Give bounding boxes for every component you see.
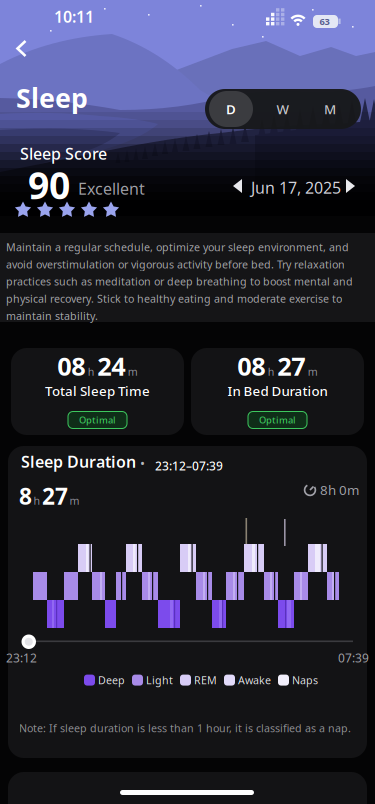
staticText: Note: If sleep duration is less than 1 h… (19, 721, 351, 735)
staticText: 90 (28, 160, 70, 210)
button[interactable]: D (209, 91, 253, 127)
staticText: Optimal (259, 414, 296, 426)
staticText: Sleep (16, 80, 88, 115)
staticText: m (128, 364, 138, 379)
staticText: practices such as meditation or deep bre… (6, 274, 353, 288)
button[interactable]: Previous day (231, 179, 245, 193)
staticText: m (69, 494, 79, 508)
staticText: Awake (238, 673, 271, 687)
button[interactable]: M (310, 92, 350, 126)
staticText: Sleep Duration (21, 451, 136, 472)
staticText: M (324, 100, 336, 118)
staticText: D (226, 100, 236, 118)
staticText: 27 (42, 481, 68, 511)
staticText: 63 (319, 15, 329, 28)
button[interactable]: W (263, 92, 303, 126)
staticText: Maintain a regular schedule, optimize yo… (6, 240, 349, 254)
staticText: 27 (277, 349, 305, 383)
staticText: Excellent (78, 178, 145, 199)
staticText: h (88, 364, 95, 379)
staticText: 24 (97, 349, 125, 383)
staticText: avoid overstimulation or vigorous activi… (6, 257, 345, 271)
staticText: physical recovery. Stick to healthy eati… (6, 291, 342, 306)
button[interactable]: Time slider (21, 634, 36, 649)
staticText: 8 (19, 481, 32, 511)
staticText: Naps (292, 673, 318, 687)
button[interactable]: Next day (343, 179, 357, 193)
staticText: 23:12–07:39 (155, 458, 223, 474)
staticText: W (276, 100, 289, 118)
staticText: h (268, 364, 275, 379)
staticText: REM (194, 673, 217, 687)
staticText: Deep (98, 673, 125, 687)
staticText: Optimal (79, 414, 116, 426)
staticText: 10:11 (54, 6, 94, 27)
staticText: 08 (57, 349, 85, 383)
staticText: • (140, 454, 145, 472)
staticText: Sleep Score (20, 143, 107, 164)
staticText: In Bed Duration (227, 382, 327, 400)
staticText: Total Sleep Time (45, 382, 150, 400)
staticText: 8h 0m (320, 481, 359, 499)
staticText: 08 (237, 349, 265, 383)
staticText: maintain stability. (6, 309, 98, 323)
staticText: Jun 17, 2025 (251, 177, 341, 198)
staticText: h (33, 494, 40, 508)
staticText: 07:39 (338, 650, 369, 666)
button[interactable]: Back (12, 39, 36, 58)
staticText: Light (146, 673, 173, 687)
staticText: m (308, 364, 318, 379)
staticText: 23:12 (6, 650, 37, 666)
